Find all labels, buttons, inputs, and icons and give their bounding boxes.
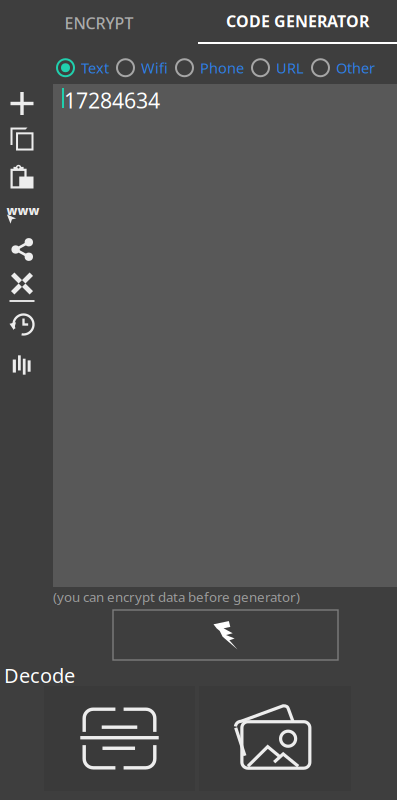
staticText: CODE GENERATOR bbox=[226, 10, 369, 32]
staticText: Decode bbox=[4, 662, 75, 689]
button[interactable]: Wifi bbox=[117, 55, 168, 80]
button[interactable]: Choose image from gallery bbox=[199, 686, 351, 791]
staticText: Phone bbox=[200, 58, 244, 77]
button[interactable]: Copy bbox=[0, 121, 44, 157]
button[interactable]: Add bbox=[0, 86, 44, 121]
button[interactable]: Other bbox=[312, 55, 375, 80]
button[interactable]: Text bbox=[57, 55, 109, 80]
button[interactable]: Phone bbox=[176, 55, 244, 80]
button[interactable]: Paste bbox=[0, 157, 44, 197]
button[interactable]: Generate code bbox=[113, 610, 338, 660]
staticText: Text bbox=[81, 58, 109, 77]
staticText: URL bbox=[276, 58, 304, 77]
staticText: (you can encrypt data before generator) bbox=[53, 588, 300, 606]
button[interactable]: Share bbox=[0, 232, 44, 267]
button[interactable]: URL bbox=[252, 55, 304, 80]
button[interactable]: Open in browser bbox=[0, 197, 44, 232]
staticText: www bbox=[6, 202, 39, 218]
staticText: ENCRYPT bbox=[64, 12, 133, 34]
button[interactable]: History bbox=[0, 302, 44, 346]
button[interactable]: ENCRYPT bbox=[0, 0, 198, 44]
button[interactable]: Scan barcode with camera bbox=[44, 686, 195, 791]
staticText: 17284634 bbox=[64, 86, 160, 114]
staticText: Wifi bbox=[141, 58, 168, 77]
button[interactable]: CODE GENERATOR bbox=[198, 0, 397, 44]
staticText: Other bbox=[336, 58, 375, 77]
button[interactable]: Barcode bbox=[0, 346, 44, 384]
button[interactable]: Clear bbox=[0, 267, 44, 300]
